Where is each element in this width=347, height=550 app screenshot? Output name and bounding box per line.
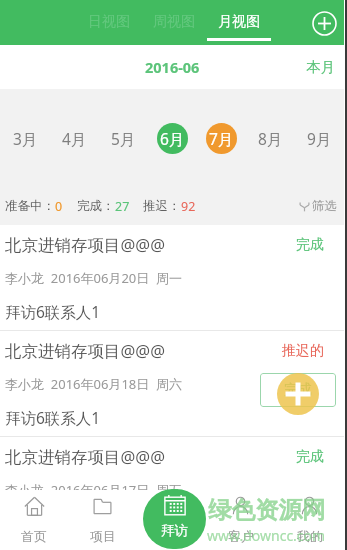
staticText: 7月: [209, 128, 234, 149]
button[interactable]: 本月: [306, 45, 344, 89]
staticText: 筛选: [312, 198, 337, 214]
button[interactable]: 北京进销存项目@@@: [0, 437, 344, 543]
staticText: 拜访: [161, 522, 188, 539]
staticText: 完成: [284, 381, 312, 399]
staticText: 准备中：: [5, 198, 55, 214]
button[interactable]: 4月: [50, 89, 99, 187]
button[interactable]: 3月: [0, 89, 50, 187]
button[interactable]: 首页: [0, 490, 68, 550]
staticText: 项目: [90, 528, 116, 544]
button[interactable]: Add: [311, 10, 337, 36]
button[interactable]: Add visit: [277, 373, 319, 415]
staticText: 日视图: [88, 13, 130, 31]
staticText: 北京进销存项目@@@: [5, 339, 282, 362]
button[interactable]: 北京进销存项目@@@: [0, 331, 344, 437]
button[interactable]: 北京进销存项目@@@: [0, 225, 344, 331]
staticText: 8月: [258, 128, 283, 149]
staticText: 本月: [306, 58, 335, 76]
staticText: 推迟：: [143, 198, 181, 214]
staticText: 首页: [21, 528, 47, 544]
button[interactable]: 项目: [68, 490, 137, 550]
button[interactable]: 8月: [246, 89, 295, 187]
button[interactable]: 周视图: [141, 0, 206, 45]
staticText: 完成: [296, 448, 324, 466]
staticText: 27: [115, 198, 130, 215]
staticText: 北京进销存项目@@@: [5, 233, 296, 256]
staticText: 3月: [13, 128, 38, 149]
staticText: 拜访6联系人1: [5, 407, 101, 428]
staticText: 0: [55, 198, 63, 215]
staticText: 9月: [307, 128, 332, 149]
button[interactable]: 我的: [275, 490, 344, 550]
button[interactable]: 月视图: [206, 0, 271, 45]
staticText: 拜访6联系人1: [5, 513, 101, 534]
button[interactable]: 日视图: [76, 0, 141, 45]
staticText: 北京进销存项目@@@: [5, 445, 296, 468]
staticText: 完成：: [77, 198, 115, 214]
button[interactable]: 完成: [260, 373, 336, 407]
staticText: 4月: [62, 128, 87, 149]
button[interactable]: 5月: [99, 89, 148, 187]
staticText: 完成: [296, 236, 324, 254]
staticText: 92: [181, 198, 196, 215]
staticText: 李小龙 2016年06月20日 周一: [5, 269, 183, 287]
button[interactable]: 6月: [148, 89, 197, 187]
button[interactable]: 筛选: [299, 198, 337, 214]
staticText: 拜访6联系人1: [5, 301, 101, 322]
staticText: 我的: [297, 528, 323, 544]
staticText: 6月: [160, 128, 185, 149]
staticText: 2016-06: [145, 57, 200, 77]
staticText: 周视图: [153, 13, 195, 31]
button[interactable]: 9月: [295, 89, 344, 187]
staticText: 绿色资源网: [208, 495, 326, 525]
staticText: www.downcc.com: [207, 526, 326, 545]
staticText: 5月: [111, 128, 136, 149]
button[interactable]: 客户: [206, 490, 275, 550]
button[interactable]: 7月: [197, 89, 246, 187]
staticText: 李小龙 2016年06月18日 周六: [5, 375, 183, 393]
staticText: 客户: [228, 528, 254, 544]
button[interactable]: 拜访: [143, 489, 206, 549]
staticText: 李小龙 2016年06月17日 周五: [5, 481, 183, 499]
staticText: 月视图: [218, 13, 260, 31]
staticText: 推迟的: [282, 342, 324, 360]
